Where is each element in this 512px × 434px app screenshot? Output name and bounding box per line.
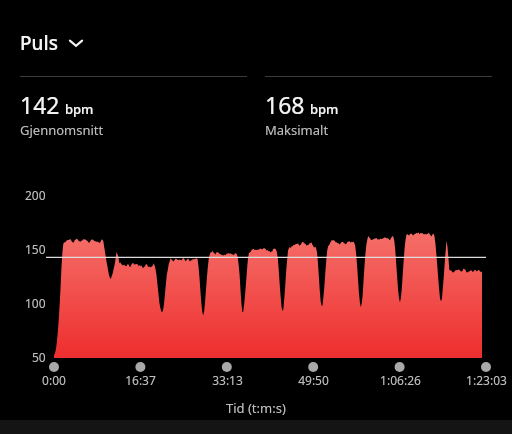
staticText: bpm — [65, 100, 94, 118]
staticText: 16:37 — [125, 372, 156, 388]
staticText: Puls — [20, 30, 58, 56]
staticText: Gjennomsnitt — [20, 121, 104, 139]
other: Change metric — [67, 34, 85, 52]
staticText: 0:00 — [42, 372, 66, 388]
staticText: Maksimalt — [265, 121, 329, 139]
button[interactable]: 142 — [20, 76, 247, 139]
staticText: 1:23:03 — [466, 372, 507, 388]
staticText: 168 — [265, 89, 305, 120]
staticText: 50 — [32, 349, 46, 365]
staticText: 200 — [25, 187, 46, 203]
button[interactable]: Puls — [20, 30, 85, 56]
staticText: 1:06:26 — [380, 372, 421, 388]
staticText: Tid (t:m:s) — [226, 399, 286, 417]
button[interactable]: 168 — [265, 76, 492, 139]
staticText: bpm — [310, 100, 339, 118]
staticText: 100 — [25, 295, 46, 311]
staticText: 49:50 — [298, 372, 329, 388]
staticText: 33:13 — [212, 372, 243, 388]
staticText: 150 — [25, 241, 46, 257]
staticText: 142 — [20, 89, 60, 120]
